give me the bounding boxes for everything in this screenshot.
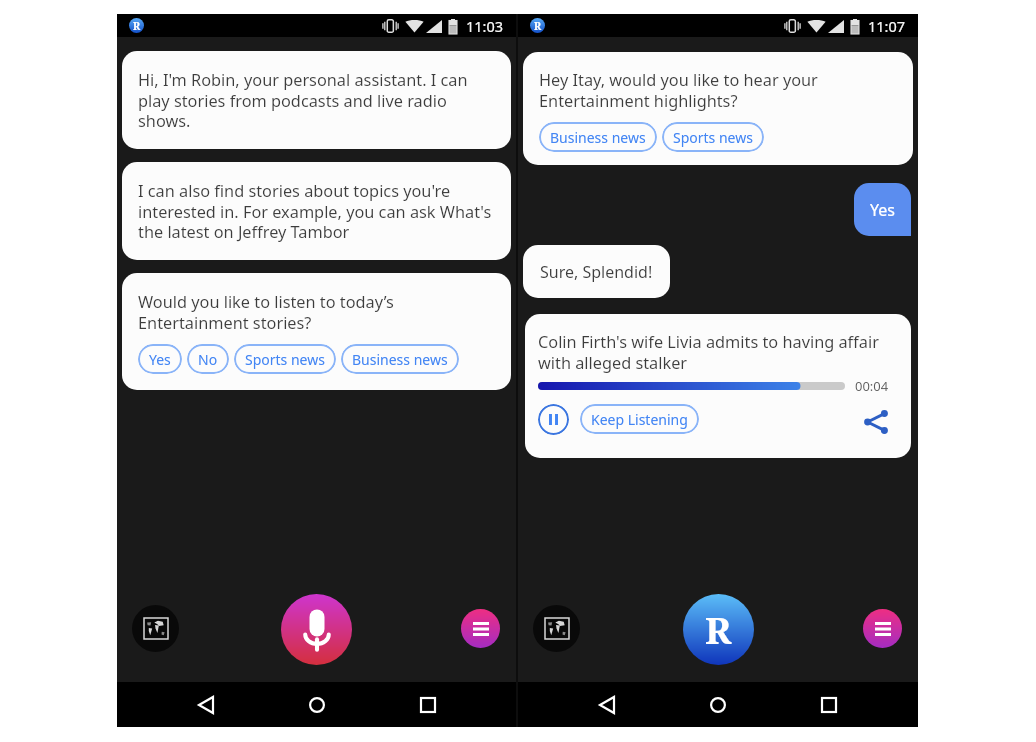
staticText: Sports news (245, 350, 325, 369)
button[interactable]: Recents (408, 685, 448, 725)
button[interactable]: No (187, 344, 229, 374)
staticText: Would you like to listen to today’s Ente… (138, 291, 498, 333)
staticText: Hey Itay, would you like to hear your En… (539, 69, 897, 111)
staticText: Yes (870, 199, 895, 221)
button[interactable]: Business news (341, 344, 459, 374)
staticText: R (705, 604, 732, 654)
staticText: R (534, 19, 542, 33)
staticText: Hi, I'm Robin, your personal assistant. … (138, 69, 495, 131)
button[interactable]: Microphone (281, 594, 352, 665)
button[interactable]: Sports news (234, 344, 336, 374)
staticText: 11:07 (868, 16, 906, 36)
button[interactable]: Recents (809, 685, 849, 725)
button[interactable]: Home (698, 685, 738, 725)
button[interactable]: Yes (138, 344, 182, 374)
button[interactable]: Discover (132, 605, 179, 652)
staticText: 00:04 (855, 377, 889, 395)
staticText: Yes (149, 350, 171, 369)
button[interactable]: Sure, Splendid! (523, 245, 670, 298)
button[interactable]: Back (587, 685, 627, 725)
button[interactable]: Home (297, 685, 337, 725)
button[interactable]: Hi, I'm Robin, your personal assistant. … (122, 51, 511, 149)
button[interactable]: Back (186, 685, 226, 725)
button[interactable]: Menu (461, 609, 500, 648)
staticText: 11:03 (466, 16, 504, 36)
button[interactable]: Sports news (662, 122, 764, 152)
button[interactable]: Menu (863, 609, 902, 648)
staticText: Sure, Splendid! (540, 261, 653, 283)
staticText: No (198, 350, 218, 369)
button[interactable]: Keep Listening (580, 404, 699, 434)
button[interactable]: Robin (683, 594, 754, 665)
button[interactable]: Discover (533, 605, 580, 652)
staticText: I can also find stories about topics you… (138, 180, 495, 242)
button[interactable]: Yes (854, 183, 911, 236)
staticText: Keep Listening (591, 410, 688, 429)
staticText: Business news (550, 128, 646, 147)
staticText: Colin Firth's wife Livia admits to havin… (538, 331, 897, 373)
staticText: R (133, 19, 141, 33)
staticText: Sports news (673, 128, 753, 147)
button[interactable]: I can also find stories about topics you… (122, 162, 511, 260)
staticText: Business news (352, 350, 448, 369)
button[interactable]: Share (860, 406, 892, 438)
button[interactable]: Business news (539, 122, 657, 152)
button[interactable]: Pause (538, 404, 569, 435)
